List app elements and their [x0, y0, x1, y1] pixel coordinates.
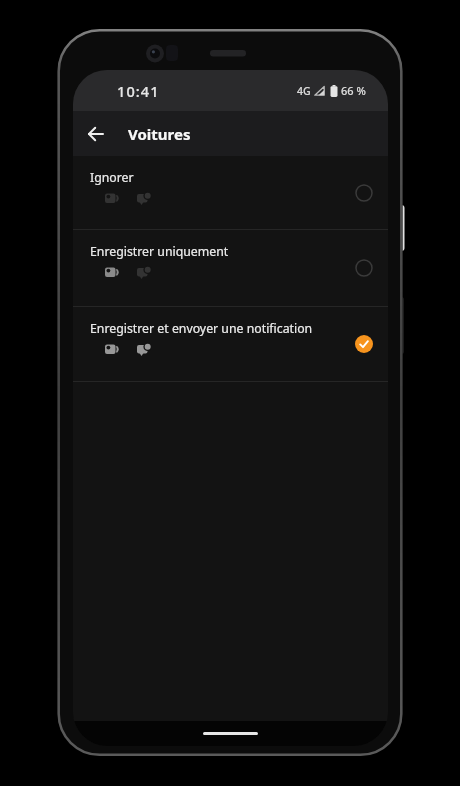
staticText: 4G [297, 84, 311, 98]
staticText: 10:41 [117, 81, 160, 101]
staticText: Enregistrer uniquement [90, 243, 229, 260]
staticText: Voitures [128, 124, 191, 144]
button[interactable] [73, 111, 118, 156]
button[interactable]: Enregistrer et envoyer une notification [73, 307, 388, 381]
staticText: Enregistrer et envoyer une notification [90, 320, 313, 337]
staticText: 66 % [341, 83, 366, 98]
button[interactable]: Enregistrer uniquement [73, 230, 388, 306]
staticText: Ignorer [90, 169, 134, 186]
button[interactable]: Ignorer [73, 156, 388, 229]
